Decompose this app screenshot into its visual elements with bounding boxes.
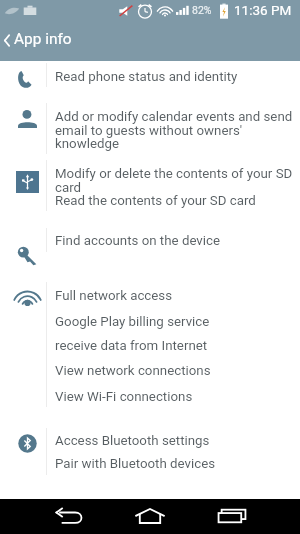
staticText: Access Bluetooth settings bbox=[55, 433, 210, 449]
button[interactable]: App info bbox=[0, 22, 300, 61]
button[interactable]: receive data from Internet bbox=[55, 338, 295, 354]
staticText: Google Play billing service bbox=[55, 314, 210, 330]
staticText: receive data from Internet bbox=[55, 338, 208, 354]
staticText: Find accounts on the device bbox=[55, 233, 221, 249]
button[interactable]: Google Play billing service bbox=[55, 314, 295, 330]
button[interactable]: Back bbox=[24, 499, 114, 534]
staticText: Full network access bbox=[55, 288, 173, 304]
button[interactable]: Recent apps bbox=[186, 499, 276, 534]
button[interactable]: Read the contents of your SD card bbox=[55, 193, 295, 209]
button[interactable]: Access Bluetooth settings bbox=[55, 433, 295, 449]
button[interactable]: Add or modify calendar events and send e… bbox=[55, 109, 295, 151]
button[interactable]: Full network access bbox=[55, 288, 295, 304]
staticText: Pair with Bluetooth devices bbox=[55, 456, 216, 472]
staticText: App info bbox=[14, 30, 72, 48]
staticText: Read phone status and identity bbox=[55, 69, 238, 85]
staticText: Read the contents of your SD card bbox=[55, 193, 256, 209]
button[interactable]: Find accounts on the device bbox=[55, 233, 295, 249]
button[interactable]: Pair with Bluetooth devices bbox=[55, 456, 295, 472]
staticText: Add or modify calendar events and send e… bbox=[55, 109, 293, 151]
button[interactable]: Modify or delete the contents of your SD… bbox=[55, 166, 295, 195]
staticText: 82% bbox=[192, 4, 212, 16]
button[interactable]: View Wi-Fi connections bbox=[55, 389, 295, 405]
staticText: Modify or delete the contents of your SD… bbox=[55, 166, 293, 195]
staticText: 11:36 PM bbox=[234, 2, 292, 18]
staticText: View network connections bbox=[55, 363, 211, 379]
button[interactable]: Home bbox=[114, 499, 186, 534]
button[interactable]: View network connections bbox=[55, 363, 295, 379]
staticText: View Wi-Fi connections bbox=[55, 389, 193, 405]
button[interactable]: Read phone status and identity bbox=[55, 69, 295, 85]
